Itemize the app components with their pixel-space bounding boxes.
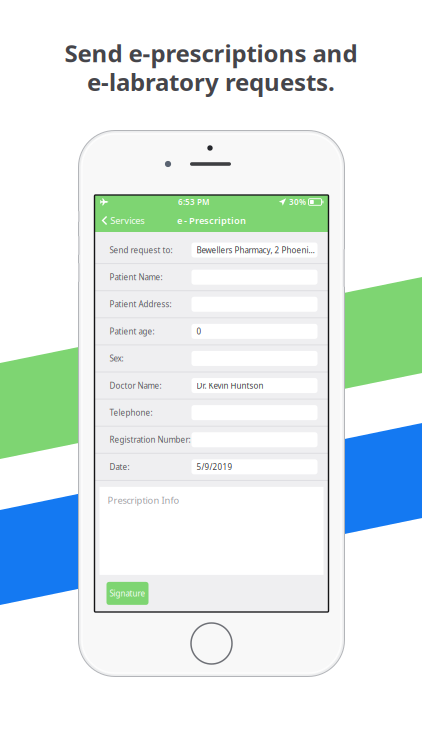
button[interactable]: Services: [94, 209, 151, 232]
staticText: Signature: [109, 588, 145, 599]
staticText: Prescription Info: [107, 494, 179, 506]
staticText: Services: [110, 214, 144, 227]
staticText: Dr. Kevin Huntson: [196, 380, 263, 391]
staticText: Date:: [109, 461, 129, 472]
staticText: e-labratory requests.: [87, 66, 335, 98]
staticText: e - Prescription: [177, 214, 246, 227]
staticText: Bewellers Pharmacy, 2 Phoenix...: [196, 245, 317, 255]
staticText: Send request to:: [109, 245, 172, 255]
staticText: 6:53 PM: [178, 197, 209, 207]
button[interactable]: Signature: [106, 582, 148, 605]
staticText: Send e-prescriptions and: [64, 37, 357, 69]
staticText: Telephone:: [109, 407, 152, 418]
staticText: Patient Address:: [109, 299, 171, 309]
staticText: Sex:: [109, 353, 123, 364]
staticText: Registration Number:: [109, 434, 190, 445]
staticText: 0: [196, 326, 201, 337]
staticText: Patient age:: [109, 326, 154, 337]
staticText: 5/9/2019: [196, 461, 232, 472]
staticText: Patient Name:: [109, 272, 162, 282]
staticText: 30%: [289, 197, 306, 207]
staticText: Doctor Name:: [109, 380, 161, 391]
